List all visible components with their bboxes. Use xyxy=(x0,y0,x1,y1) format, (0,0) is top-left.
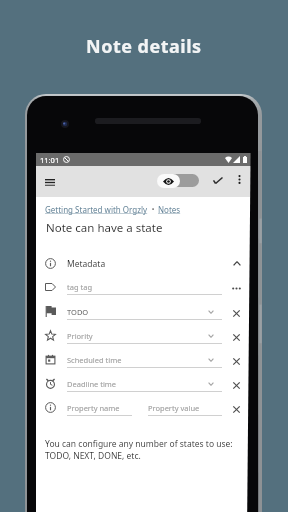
staticText: 11:01 xyxy=(40,155,60,165)
button[interactable]: Property value xyxy=(148,403,200,413)
staticText: You can configure any number of states t… xyxy=(45,438,233,462)
button[interactable]: TODO xyxy=(67,307,89,317)
button[interactable]: Notes xyxy=(158,204,181,215)
button[interactable]: Tag options xyxy=(228,280,245,297)
button[interactable]: Clear Priority xyxy=(228,329,245,346)
staticText: • xyxy=(148,205,158,215)
button[interactable]: Deadline time xyxy=(67,379,117,389)
staticText: Note can have a state xyxy=(46,220,163,236)
button[interactable]: Priority xyxy=(67,331,93,341)
button[interactable]: Scheduled time xyxy=(67,355,122,365)
button[interactable]: Metadata xyxy=(36,252,251,274)
staticText: Note details xyxy=(86,34,202,59)
button[interactable]: Clear Deadline time xyxy=(228,377,245,394)
button[interactable]: Clear TODO xyxy=(228,305,245,322)
button[interactable]: Navigation menu xyxy=(41,173,59,191)
button[interactable]: Clear Scheduled time xyxy=(228,353,245,370)
button[interactable]: More options xyxy=(231,171,248,188)
staticText: Metadata xyxy=(67,258,106,270)
button[interactable]: Clear property xyxy=(228,401,245,418)
button[interactable]: Toggle note preview xyxy=(157,174,199,188)
button[interactable]: Save note xyxy=(209,171,227,189)
button[interactable]: Getting Started with Orgzly xyxy=(45,204,148,215)
staticText: tag tag xyxy=(67,282,93,292)
button[interactable]: Property name xyxy=(67,403,120,413)
